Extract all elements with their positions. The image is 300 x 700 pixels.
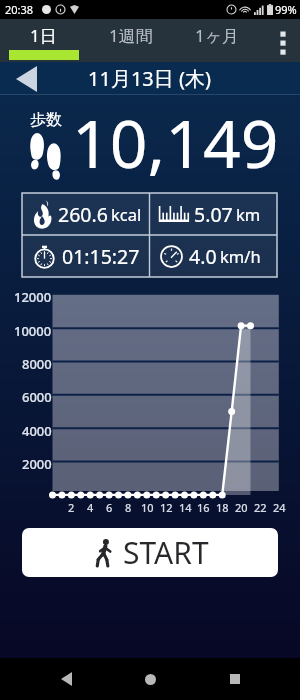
- staticText: 99%: [275, 2, 297, 17]
- staticText: km: [236, 203, 261, 225]
- button[interactable]: More options: [271, 28, 295, 52]
- button[interactable]: 1週間: [87, 19, 174, 62]
- staticText: 11月13日 (木): [88, 65, 211, 92]
- staticText: 12000: [14, 288, 52, 306]
- button[interactable]: Recent apps: [216, 660, 254, 698]
- staticText: 10,149: [72, 97, 279, 187]
- staticText: 18: [216, 500, 229, 515]
- button[interactable]: 1ヶ月: [174, 19, 261, 62]
- staticText: 20: [235, 500, 248, 515]
- button[interactable]: Home: [131, 660, 169, 698]
- staticText: 22: [254, 500, 267, 515]
- button[interactable]: START: [22, 528, 278, 577]
- staticText: 16: [197, 500, 210, 515]
- button[interactable]: 5.07: [149, 193, 276, 235]
- staticText: 14: [179, 500, 192, 515]
- staticText: kcal: [111, 203, 142, 225]
- staticText: 1日: [30, 24, 57, 47]
- staticText: 01:15:27: [62, 243, 140, 270]
- staticText: 12: [160, 500, 173, 515]
- staticText: km/h: [220, 245, 261, 267]
- button[interactable]: Previous day: [11, 64, 41, 94]
- staticText: 8: [125, 500, 132, 515]
- staticText: 1週間: [109, 24, 153, 47]
- staticText: 4: [87, 500, 94, 515]
- staticText: 6: [106, 500, 113, 515]
- staticText: 260.6: [58, 201, 108, 228]
- staticText: 5.07: [194, 201, 233, 228]
- staticText: 6000: [22, 388, 52, 406]
- button[interactable]: 1日: [0, 19, 87, 62]
- staticText: 4000: [22, 422, 52, 440]
- button[interactable]: 4.0: [149, 235, 276, 277]
- staticText: 2000: [22, 455, 52, 473]
- staticText: 10000: [14, 322, 52, 340]
- button[interactable]: 260.6: [22, 193, 149, 235]
- staticText: 24: [273, 500, 286, 515]
- staticText: 8000: [22, 355, 52, 373]
- button[interactable]: 01:15:27: [22, 235, 149, 277]
- staticText: 歩数: [30, 110, 62, 130]
- staticText: 1ヶ月: [195, 24, 240, 47]
- staticText: 4.0: [189, 243, 217, 270]
- staticText: 20:38: [5, 2, 34, 17]
- staticText: START: [123, 532, 209, 573]
- staticText: 10: [141, 500, 154, 515]
- staticText: 2: [68, 500, 75, 515]
- button[interactable]: Back: [47, 660, 85, 698]
